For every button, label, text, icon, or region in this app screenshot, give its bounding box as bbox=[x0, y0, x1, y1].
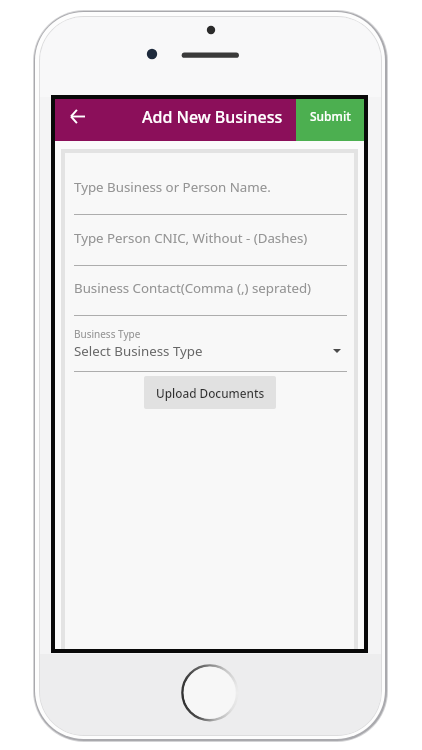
staticText: Select Business Type bbox=[74, 342, 203, 360]
button[interactable]: Type Person CNIC, Without - (Dashes) bbox=[74, 223, 347, 266]
staticText: Upload Documents bbox=[156, 385, 265, 401]
staticText: Submit bbox=[310, 108, 351, 124]
staticText: Type Business or Person Name. bbox=[74, 178, 271, 196]
staticText: Add New Business bbox=[142, 106, 283, 128]
button[interactable]: Business Type bbox=[74, 326, 347, 372]
button[interactable]: Business Contact(Comma (,) seprated) bbox=[74, 273, 347, 316]
button[interactable]: Submit bbox=[296, 99, 364, 141]
staticText: Business Type bbox=[74, 327, 141, 341]
button[interactable]: Type Business or Person Name. bbox=[74, 172, 347, 215]
staticText: Type Person CNIC, Without - (Dashes) bbox=[74, 229, 308, 247]
button[interactable]: Upload Documents bbox=[144, 376, 276, 409]
button[interactable]: Back bbox=[55, 99, 101, 135]
staticText: Business Contact(Comma (,) seprated) bbox=[74, 279, 312, 297]
